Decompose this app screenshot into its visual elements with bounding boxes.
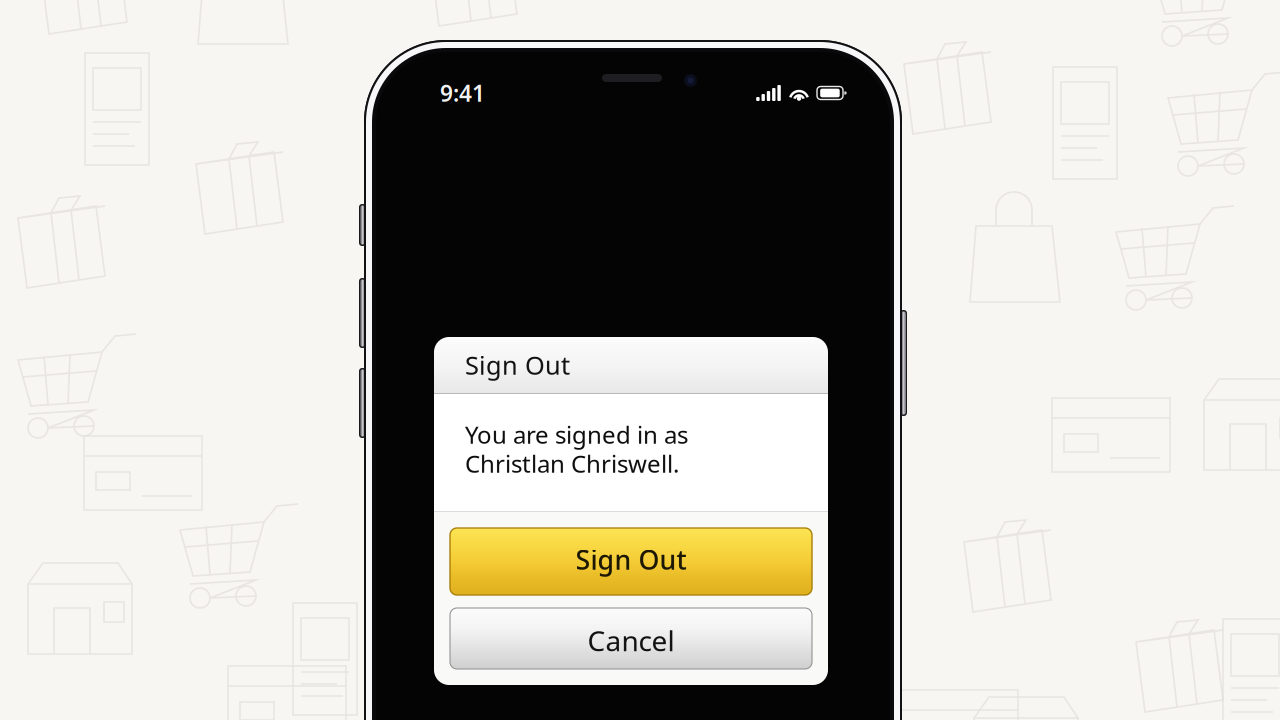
- staticText: You are signed in as: [465, 419, 688, 450]
- button[interactable]: Cancel: [450, 608, 812, 669]
- button[interactable]: Sign Out: [450, 528, 812, 595]
- staticText: 9:41: [440, 78, 485, 108]
- staticText: Christlan Chriswell.: [465, 448, 679, 479]
- staticText: Sign Out: [575, 542, 686, 577]
- staticText: Sign Out: [465, 348, 570, 382]
- staticText: Cancel: [587, 622, 674, 659]
